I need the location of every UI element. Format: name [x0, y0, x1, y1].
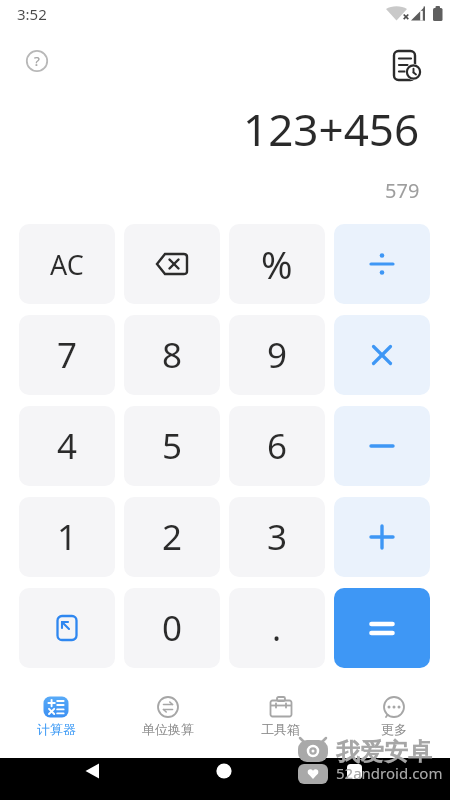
button[interactable]: 1 — [19, 497, 115, 577]
staticText: 3:52 — [17, 4, 47, 24]
staticText: 更多 — [381, 721, 407, 737]
staticText: 7 — [57, 331, 78, 379]
staticText: ? — [34, 52, 40, 70]
button[interactable]: 更多 — [337, 690, 450, 738]
button[interactable]: AC — [19, 224, 115, 304]
staticText: 4 — [57, 422, 78, 470]
button[interactable]: 3 — [229, 497, 325, 577]
staticText: 1 — [57, 513, 78, 561]
button[interactable] — [334, 497, 430, 577]
staticText: AC — [50, 246, 84, 283]
staticText: 0 — [162, 604, 183, 652]
button[interactable]: 6 — [229, 406, 325, 486]
staticText: 2 — [162, 513, 183, 561]
button[interactable] — [19, 588, 115, 668]
staticText: . — [272, 605, 282, 651]
button[interactable]: 单位换算 — [112, 690, 224, 738]
button[interactable]: 工具箱 — [224, 690, 337, 738]
button[interactable] — [390, 47, 424, 83]
staticText: % — [261, 238, 293, 290]
staticText: 5 — [162, 422, 183, 470]
button[interactable]: 7 — [19, 315, 115, 395]
button[interactable] — [124, 224, 220, 304]
button[interactable]: . — [229, 588, 325, 668]
staticText: 我爱安卓 — [336, 737, 432, 767]
button[interactable]: ? — [22, 46, 52, 76]
staticText: 单位换算 — [142, 721, 194, 737]
staticText: 52android.com — [336, 763, 443, 783]
staticText: 计算器 — [37, 721, 76, 737]
button[interactable]: % — [229, 224, 325, 304]
button[interactable] — [334, 406, 430, 486]
button[interactable]: 4 — [19, 406, 115, 486]
staticText: 9 — [267, 331, 288, 379]
staticText: 3 — [267, 513, 288, 561]
staticText: 工具箱 — [261, 721, 300, 737]
button[interactable]: 9 — [229, 315, 325, 395]
button[interactable] — [334, 588, 430, 668]
staticText: 6 — [267, 422, 288, 470]
button[interactable]: 8 — [124, 315, 220, 395]
button[interactable]: 5 — [124, 406, 220, 486]
button[interactable]: 2 — [124, 497, 220, 577]
staticText: 123+456 — [243, 99, 420, 159]
button[interactable] — [334, 315, 430, 395]
staticText: 8 — [162, 331, 183, 379]
button[interactable]: 计算器 — [0, 690, 112, 738]
button[interactable] — [334, 224, 430, 304]
button[interactable]: 0 — [124, 588, 220, 668]
staticText: 579 — [385, 177, 420, 204]
